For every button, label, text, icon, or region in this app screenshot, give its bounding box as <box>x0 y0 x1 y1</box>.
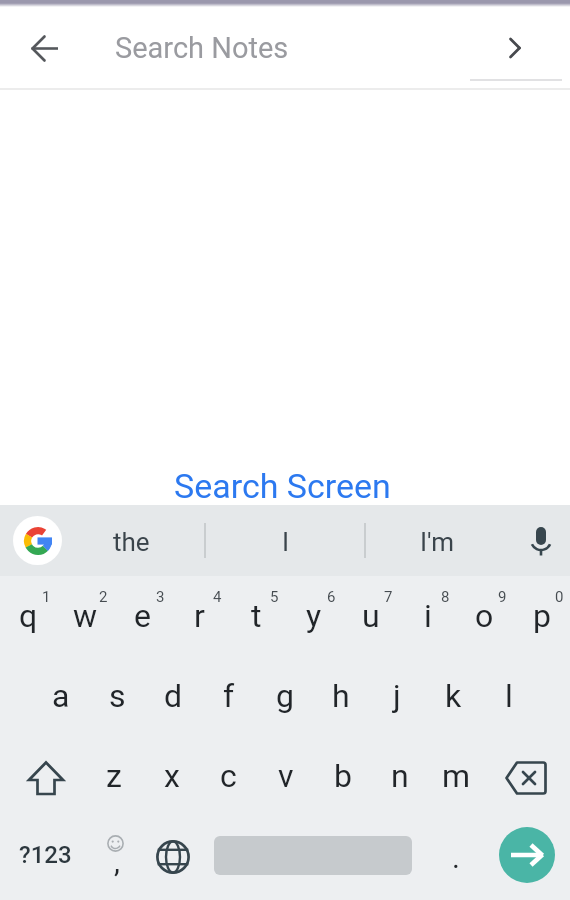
button[interactable] <box>22 25 68 71</box>
button[interactable] <box>493 26 537 70</box>
button[interactable]: q <box>0 576 57 656</box>
button[interactable] <box>27 761 65 799</box>
button[interactable]: u <box>342 576 399 656</box>
button[interactable]: f <box>201 656 257 736</box>
button[interactable]: s <box>89 656 145 736</box>
staticText: 6 <box>327 588 336 606</box>
staticText: r <box>194 597 205 635</box>
staticText: , <box>114 844 120 879</box>
button[interactable] <box>13 516 62 565</box>
staticText: l <box>505 677 513 715</box>
staticText: u <box>362 597 380 635</box>
button[interactable]: h <box>313 656 369 736</box>
button[interactable]: d <box>145 656 201 736</box>
staticText: Search Notes <box>115 31 289 65</box>
staticText: 5 <box>270 588 279 606</box>
button[interactable] <box>205 505 363 576</box>
button[interactable] <box>70 505 203 576</box>
staticText: t <box>251 597 262 635</box>
staticText: d <box>164 677 183 715</box>
staticText: the <box>113 527 150 557</box>
staticText: q <box>19 597 38 635</box>
button[interactable]: y <box>285 576 342 656</box>
button[interactable]: t <box>228 576 285 656</box>
staticText: 8 <box>441 588 450 606</box>
button[interactable]: b <box>314 736 371 816</box>
button[interactable]: v <box>257 736 314 816</box>
button[interactable]: j <box>369 656 425 736</box>
button[interactable] <box>142 813 199 897</box>
button[interactable]: n <box>371 736 428 816</box>
staticText: x <box>164 757 180 795</box>
staticText: k <box>445 677 462 715</box>
staticText: j <box>393 677 401 715</box>
staticText: w <box>73 597 98 635</box>
button[interactable]: ?123 <box>0 813 85 897</box>
button[interactable] <box>484 813 570 897</box>
button[interactable]: i <box>399 576 456 656</box>
staticText: p <box>533 597 551 635</box>
button[interactable] <box>0 736 85 816</box>
button[interactable]: l <box>481 656 537 736</box>
button[interactable] <box>366 505 509 576</box>
button[interactable]: . <box>427 813 484 897</box>
staticText: o <box>475 597 494 635</box>
button[interactable]: o <box>456 576 513 656</box>
staticText: c <box>220 757 237 795</box>
staticText: b <box>334 757 352 795</box>
button[interactable] <box>521 521 561 561</box>
staticText: e <box>134 597 151 635</box>
staticText: h <box>332 677 350 715</box>
staticText: ?123 <box>19 841 72 869</box>
staticText: y <box>306 597 322 635</box>
staticText: I'm <box>420 527 455 557</box>
staticText: 3 <box>156 588 165 606</box>
button[interactable] <box>485 736 570 816</box>
button[interactable]: a <box>33 656 89 736</box>
button[interactable]: , <box>85 813 142 897</box>
staticText: v <box>278 757 294 795</box>
staticText: s <box>109 677 126 715</box>
button[interactable] <box>199 813 427 897</box>
staticText: z <box>106 757 122 795</box>
staticText: g <box>276 677 294 715</box>
staticText: i <box>424 597 432 635</box>
staticText: . <box>452 840 460 875</box>
staticText: 9 <box>498 588 507 606</box>
staticText: 7 <box>384 588 393 606</box>
staticText: 0 <box>555 588 564 606</box>
staticText: 1 <box>42 588 51 606</box>
button[interactable]: x <box>143 736 200 816</box>
button[interactable]: r <box>171 576 228 656</box>
staticText: m <box>442 757 471 795</box>
staticText: I <box>282 527 290 557</box>
staticText: f <box>223 677 235 715</box>
button[interactable]: m <box>428 736 485 816</box>
button[interactable]: w <box>57 576 114 656</box>
staticText: 4 <box>213 588 222 606</box>
button[interactable]: k <box>425 656 481 736</box>
staticText: Search Screen <box>174 466 391 506</box>
staticText: n <box>391 757 409 795</box>
button[interactable]: c <box>200 736 257 816</box>
button[interactable]: e <box>114 576 171 656</box>
button[interactable]: g <box>257 656 313 736</box>
button[interactable]: z <box>85 736 143 816</box>
button[interactable]: p <box>513 576 570 656</box>
staticText: a <box>52 677 70 715</box>
staticText: 2 <box>99 588 108 606</box>
